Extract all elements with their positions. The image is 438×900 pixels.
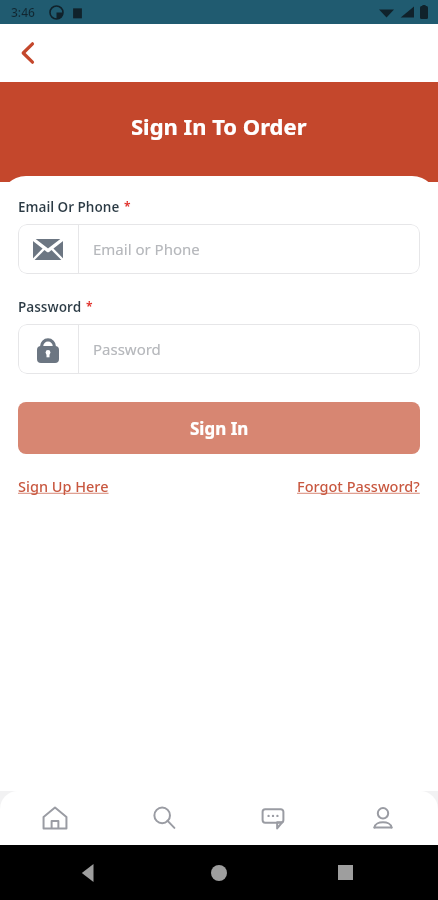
- staticText: *: [124, 198, 131, 214]
- staticText: 3:46: [11, 4, 35, 20]
- button[interactable]: Password: [18, 324, 420, 374]
- button[interactable]: Profile: [328, 791, 438, 845]
- button[interactable]: Messages: [218, 791, 328, 845]
- button[interactable]: Sign In: [18, 402, 420, 454]
- staticText: Sign In To Order: [131, 111, 307, 141]
- other: Home: [211, 865, 227, 881]
- button[interactable]: Sign Up Here: [18, 476, 109, 496]
- staticText: Email Or Phone: [18, 198, 120, 216]
- button[interactable]: Email or Phone: [18, 224, 420, 274]
- staticText: Password: [93, 339, 161, 359]
- staticText: Forgot Password?: [297, 476, 420, 496]
- button[interactable]: Forgot Password?: [297, 476, 420, 496]
- other: Back: [80, 864, 98, 882]
- button[interactable]: Search: [109, 791, 218, 845]
- button[interactable]: Home: [0, 791, 109, 845]
- staticText: Sign In: [190, 417, 249, 440]
- staticText: Sign Up Here: [18, 476, 109, 496]
- staticText: Email or Phone: [93, 239, 200, 259]
- button[interactable]: Back: [6, 31, 50, 75]
- staticText: *: [86, 298, 93, 314]
- staticText: Password: [18, 298, 82, 316]
